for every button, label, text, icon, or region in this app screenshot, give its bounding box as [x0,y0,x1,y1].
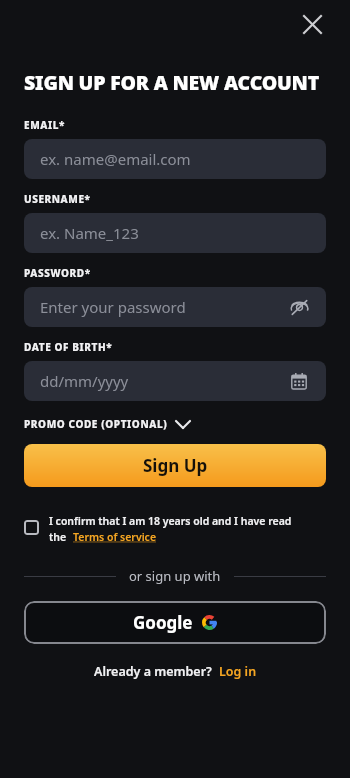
button[interactable]: I confirm that I am 18 years old and I h… [24,514,326,544]
staticText: the [49,530,67,544]
button[interactable]: Enter your password [24,287,326,327]
button[interactable]: ex. name@email.com [24,139,326,179]
staticText: PASSWORD* [24,266,91,280]
button[interactable]: PROMO CODE (OPTIONAL) [24,417,190,431]
staticText: PROMO CODE (OPTIONAL) [24,417,168,431]
button[interactable]: ex. Name_123 [24,213,326,253]
button[interactable]: Pick date [288,370,310,392]
staticText: ex. name@email.com [40,149,191,169]
staticText: ex. Name_123 [40,223,139,243]
button[interactable]: Show password [288,296,310,318]
staticText: SIGN UP FOR A NEW ACCOUNT [24,69,319,96]
staticText: DATE OF BIRTH* [24,340,113,354]
button[interactable]: Log in [219,663,257,680]
button[interactable]: Terms of service [73,530,157,544]
staticText: Enter your password [40,297,186,317]
staticText: or sign up with [129,567,221,585]
button[interactable]: Google [24,601,326,644]
staticText: Already a member? [94,663,212,680]
staticText: Google [133,611,193,634]
button[interactable]: Close [296,8,328,40]
button[interactable]: dd/mm/yyyy [24,361,326,401]
staticText: I confirm that I am 18 years old and I h… [49,514,292,528]
staticText: Sign Up [143,454,208,477]
button[interactable]: Sign Up [24,444,326,487]
staticText: dd/mm/yyyy [40,371,129,391]
staticText: EMAIL* [24,118,65,132]
staticText: USERNAME* [24,192,91,206]
